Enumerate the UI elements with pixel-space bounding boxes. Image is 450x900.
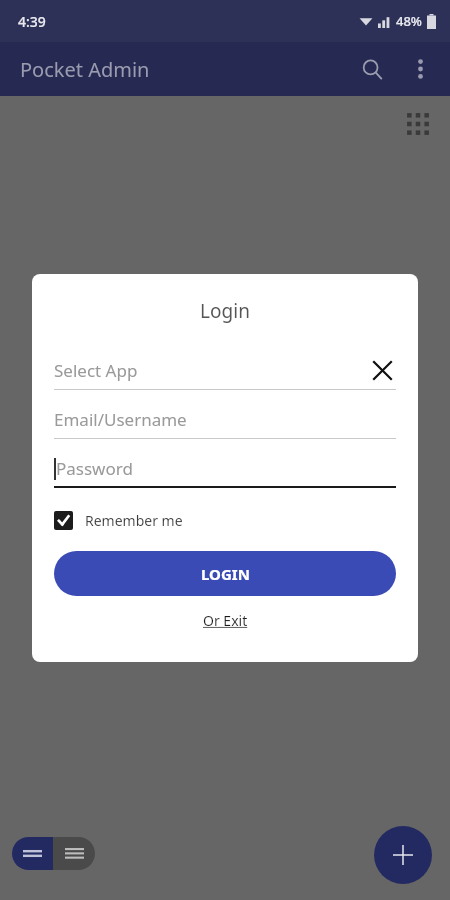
button[interactable]: Email/Username — [54, 399, 396, 439]
button[interactable]: Password — [54, 448, 396, 488]
button[interactable]: Select App — [54, 350, 396, 390]
button[interactable]: Search — [348, 45, 396, 93]
staticText: Remember me — [85, 511, 183, 530]
staticText: 4:39 — [18, 12, 46, 31]
button[interactable]: More options — [396, 45, 444, 93]
button[interactable]: Remember me — [54, 505, 183, 535]
button[interactable] — [12, 837, 53, 870]
button[interactable]: Clear selection — [368, 356, 396, 384]
other: View mode — [12, 837, 95, 870]
staticText: Pocket Admin — [20, 56, 150, 83]
staticText: Login — [32, 298, 418, 324]
staticText: Password — [56, 457, 133, 480]
button[interactable]: Apps grid — [398, 104, 438, 144]
staticText: 48% — [396, 12, 422, 30]
button[interactable]: LOGIN — [54, 551, 396, 596]
button[interactable]: Add — [374, 826, 432, 884]
staticText: Or Exit — [203, 611, 248, 630]
staticText: Select App — [54, 359, 138, 382]
button[interactable] — [53, 837, 95, 870]
staticText: LOGIN — [201, 564, 250, 584]
button[interactable]: Or Exit — [195, 609, 256, 632]
staticText: Email/Username — [54, 408, 187, 431]
